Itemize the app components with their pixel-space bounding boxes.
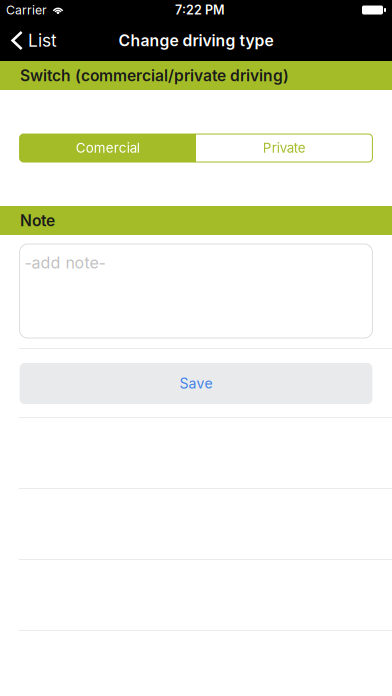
staticText: 7:22 PM xyxy=(175,2,225,18)
staticText: Note xyxy=(20,211,55,230)
staticText: Comercial xyxy=(76,140,140,156)
staticText: -add note- xyxy=(25,253,106,272)
staticText: Private xyxy=(263,140,306,156)
button[interactable]: -add note- xyxy=(20,244,372,338)
staticText: Switch (commercial/private driving) xyxy=(20,66,289,85)
button[interactable]: Back to List xyxy=(0,20,90,61)
button[interactable]: Save xyxy=(20,363,372,404)
button[interactable]: Comercial xyxy=(20,134,196,162)
staticText: Carrier xyxy=(6,3,47,17)
staticText: Save xyxy=(179,375,212,392)
button[interactable]: Private xyxy=(196,134,372,162)
staticText: Change driving type xyxy=(118,31,273,50)
staticText: List xyxy=(28,30,57,51)
